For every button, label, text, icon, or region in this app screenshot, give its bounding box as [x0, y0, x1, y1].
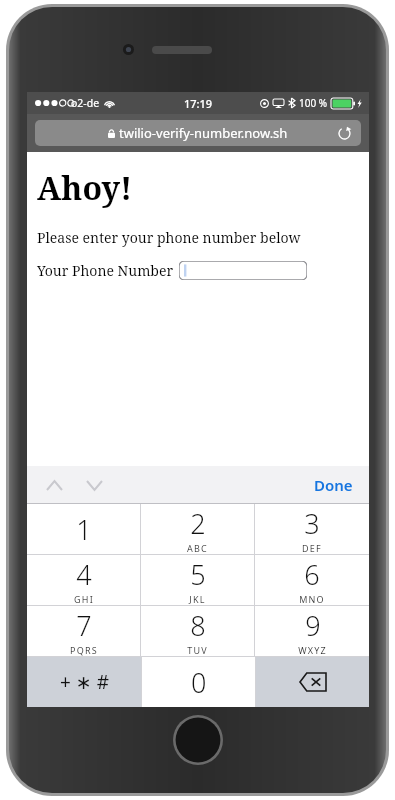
staticText: 9: [305, 607, 321, 644]
button[interactable]: Done: [314, 475, 353, 495]
staticText: + ∗ #: [60, 669, 109, 695]
button[interactable]: 1: [27, 504, 140, 554]
button[interactable]: Reload: [336, 125, 352, 141]
button[interactable]: 9: [255, 606, 369, 656]
button[interactable]: Previous field: [41, 472, 67, 498]
staticText: JKL: [189, 593, 206, 605]
staticText: Done: [314, 475, 353, 495]
button[interactable]: Delete: [256, 657, 369, 707]
button[interactable]: 5: [141, 555, 254, 605]
staticText: 4: [76, 556, 92, 593]
button[interactable]: twilio-verify-number.now.sh: [35, 120, 361, 146]
staticText: 3: [304, 505, 320, 542]
staticText: twilio-verify-number.now.sh: [119, 124, 288, 142]
staticText: 0: [191, 664, 207, 701]
staticText: Please enter your phone number below: [37, 228, 301, 247]
button[interactable]: 3: [255, 504, 369, 554]
staticText: DEF: [302, 542, 322, 554]
staticText: 2: [190, 505, 206, 542]
staticText: GHI: [74, 593, 94, 605]
button[interactable]: 6: [255, 555, 369, 605]
staticText: 1: [76, 511, 92, 548]
staticText: PQRS: [70, 644, 98, 656]
staticText: MNO: [299, 593, 325, 605]
staticText: ABC: [187, 542, 208, 554]
staticText: 100 %: [299, 96, 328, 110]
staticText: TUV: [187, 644, 208, 656]
staticText: Your Phone Number: [37, 261, 174, 280]
staticText: 8: [190, 607, 206, 644]
button[interactable]: 0: [142, 657, 255, 707]
button[interactable]: Next field: [81, 472, 107, 498]
button[interactable]: [179, 261, 307, 280]
staticText: Ahoy!: [37, 166, 133, 210]
staticText: 17:19: [184, 96, 213, 111]
button[interactable]: 4: [27, 555, 140, 605]
staticText: 5: [190, 556, 206, 593]
button[interactable]: 2: [141, 504, 254, 554]
button[interactable]: 7: [27, 606, 140, 656]
staticText: 7: [76, 607, 92, 644]
staticText: WXYZ: [298, 644, 327, 656]
button[interactable]: + ∗ #: [27, 657, 141, 707]
staticText: o2-de: [71, 96, 100, 110]
staticText: 6: [304, 556, 320, 593]
button[interactable]: 8: [141, 606, 254, 656]
